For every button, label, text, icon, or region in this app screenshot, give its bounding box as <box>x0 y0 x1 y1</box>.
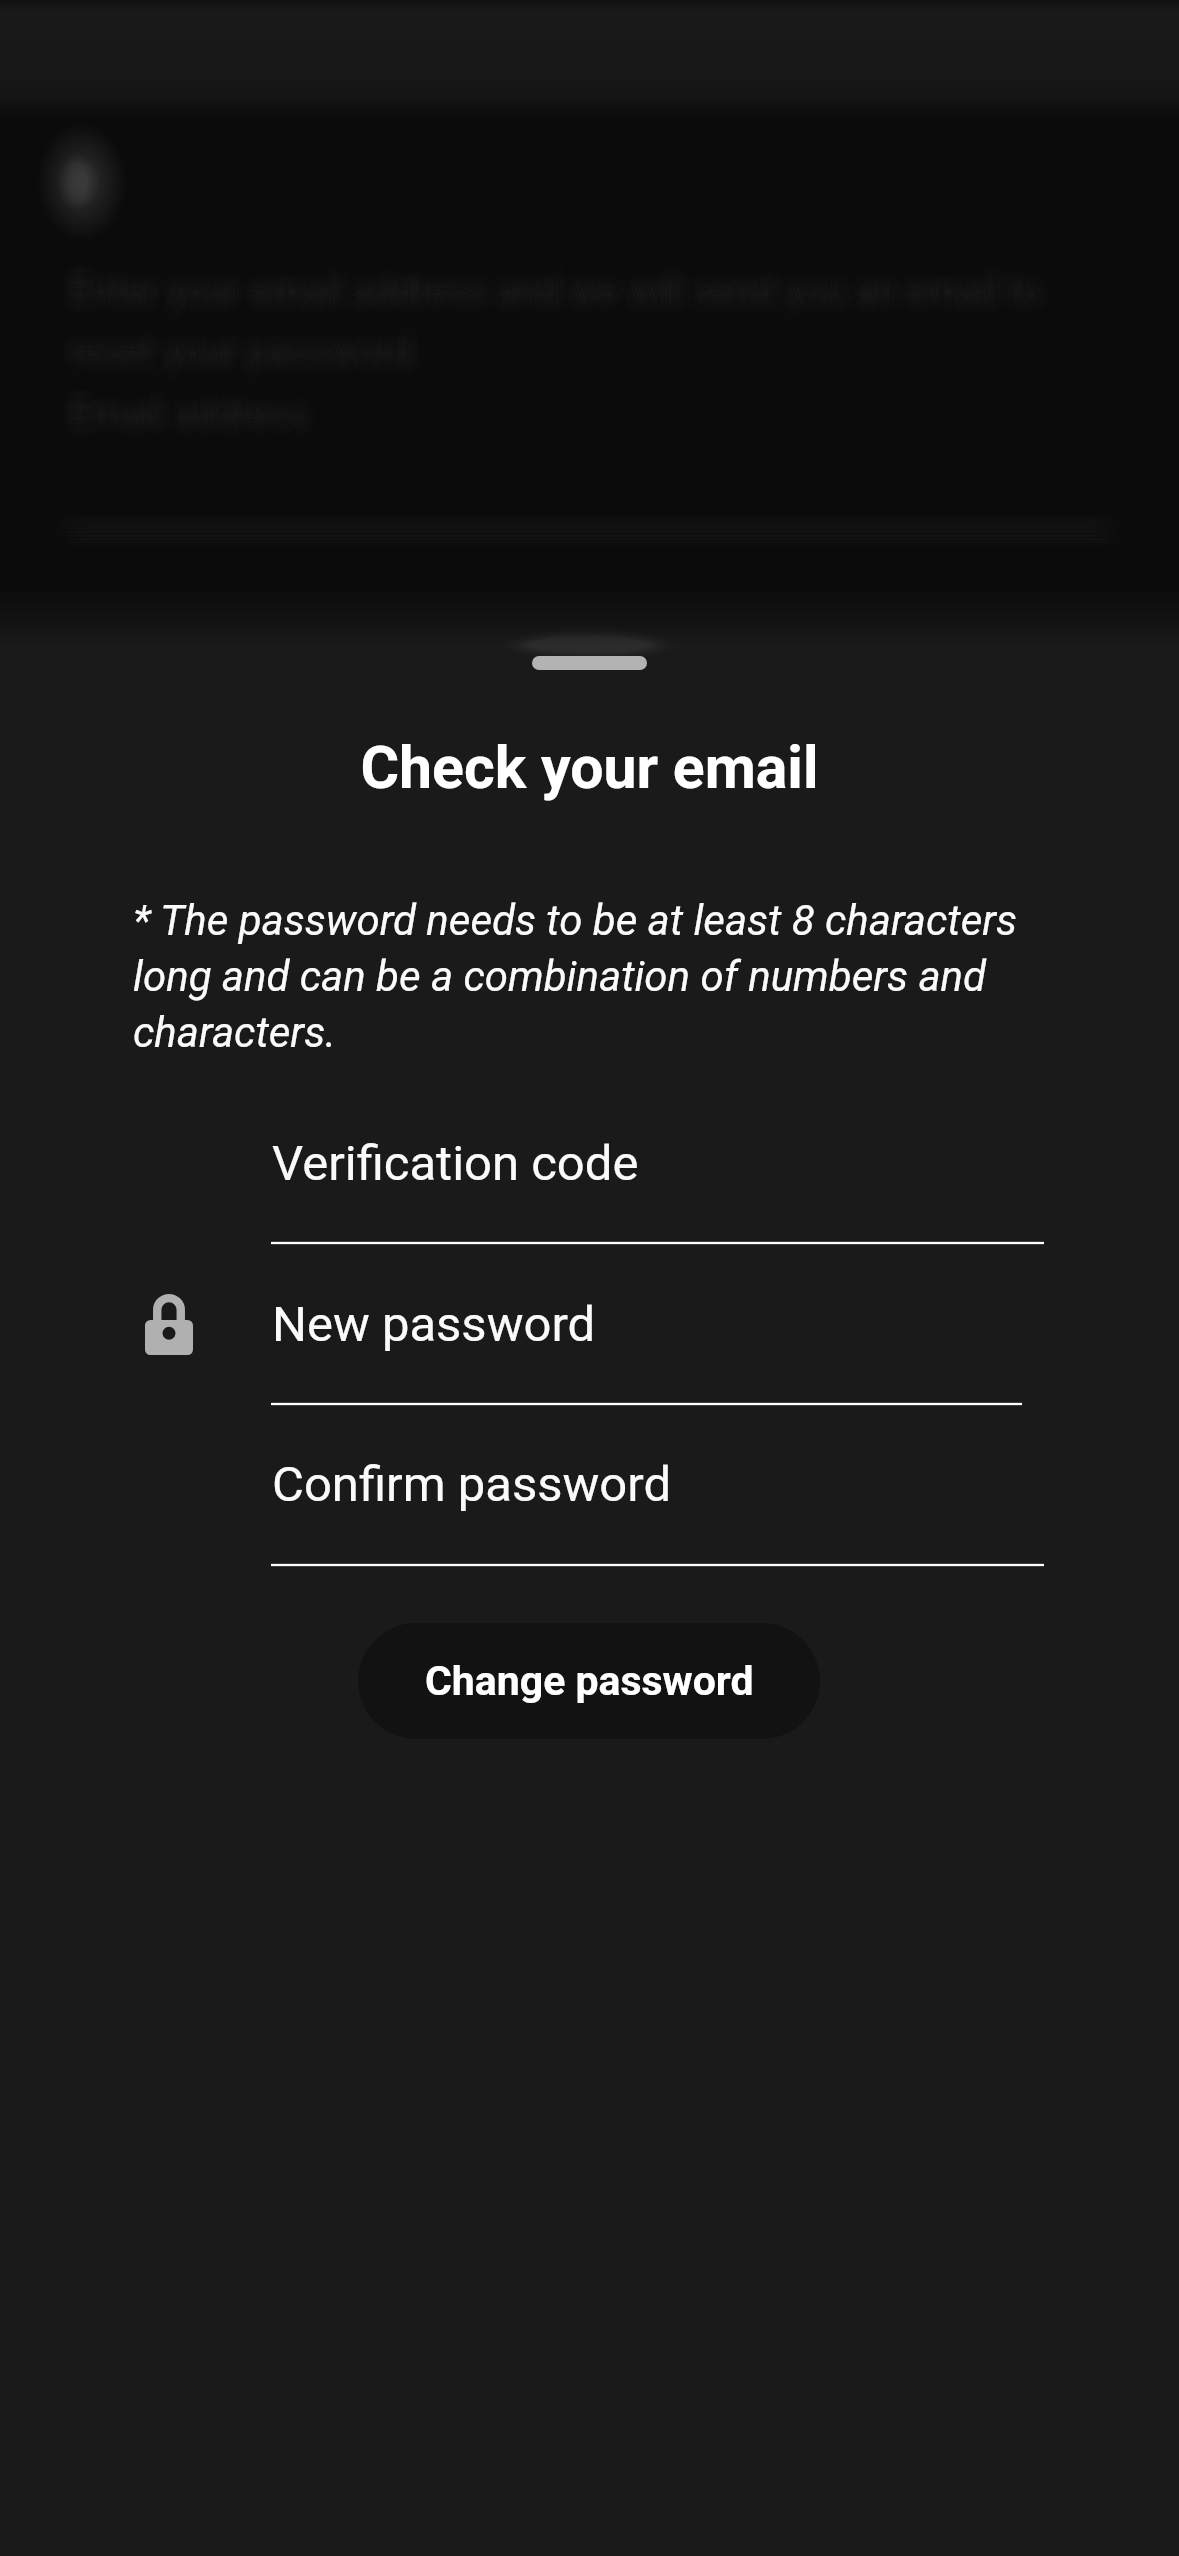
staticText: New password <box>272 1296 596 1353</box>
staticText: Verification code <box>272 1135 639 1192</box>
staticText: Confirm password <box>272 1456 672 1513</box>
button[interactable]: Change password <box>358 1623 820 1739</box>
staticText: Change password <box>425 1657 754 1705</box>
button[interactable] <box>271 1147 1044 1247</box>
button[interactable]: Back <box>30 128 140 238</box>
other: Password <box>145 1293 193 1355</box>
staticText: Check your email <box>0 733 1179 802</box>
staticText: * The password needs to be at least 8 ch… <box>133 896 1048 1057</box>
button[interactable] <box>271 1308 1022 1408</box>
button[interactable]: Drag handle <box>532 656 647 670</box>
button[interactable] <box>271 1469 1044 1569</box>
